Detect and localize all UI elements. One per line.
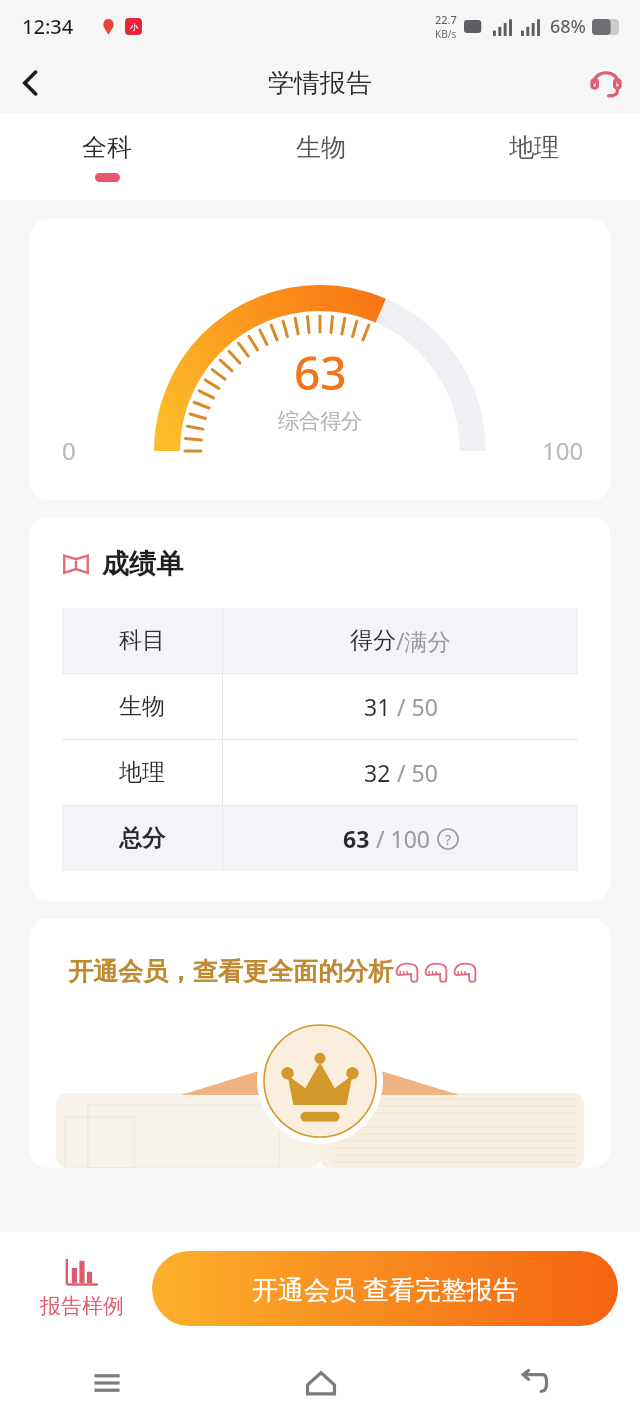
staticText: / 50 <box>391 691 438 722</box>
staticText: 总分 <box>119 824 165 853</box>
staticText: KB/s <box>435 27 457 41</box>
button[interactable]: Back <box>0 52 62 114</box>
button[interactable]: Back <box>427 1344 640 1422</box>
staticText: 学情报告 <box>268 67 372 100</box>
staticText: 地理 <box>119 758 165 787</box>
button[interactable]: 开通会员 查看完整报告 <box>152 1251 618 1326</box>
staticText: 生物 <box>119 692 165 721</box>
button[interactable]: Info <box>437 828 459 850</box>
button[interactable]: 全科 <box>0 114 214 200</box>
staticText: 0 <box>62 434 76 467</box>
staticText: 31 <box>364 691 391 722</box>
staticText: 12:34 <box>22 13 74 40</box>
staticText: 报告样例 <box>40 1293 124 1319</box>
staticText: 32 <box>364 757 391 788</box>
button[interactable]: Customer service <box>580 57 632 109</box>
staticText: / 50 <box>391 757 438 788</box>
staticText: /满分 <box>396 625 451 656</box>
staticText: 63 <box>343 823 370 854</box>
staticText: 得分 <box>350 626 396 655</box>
button[interactable]: 报告样例 <box>22 1232 142 1344</box>
staticText: / 100 <box>370 823 430 854</box>
staticText: 开通会员 查看完整报告 <box>252 1271 519 1307</box>
staticText: 科目 <box>119 626 165 655</box>
staticText: 全科 <box>82 132 132 163</box>
staticText: 综合得分 <box>278 408 362 434</box>
staticText: 小 <box>130 22 138 32</box>
staticText: 开通会员，查看更全面的分析 <box>68 956 393 987</box>
staticText: 22.7 <box>435 12 457 27</box>
staticText: 100 <box>542 434 584 467</box>
button[interactable]: 地理 <box>427 114 640 200</box>
staticText: 生物 <box>296 132 346 163</box>
staticText: ? <box>445 830 452 849</box>
staticText: 成绩单 <box>102 547 183 581</box>
staticText: 地理 <box>509 132 559 163</box>
button[interactable]: Home <box>214 1344 427 1422</box>
button[interactable]: 生物 <box>214 114 427 200</box>
button[interactable]: Recents <box>0 1344 214 1422</box>
staticText: 63 <box>294 341 347 404</box>
staticText: 68% <box>550 14 586 39</box>
